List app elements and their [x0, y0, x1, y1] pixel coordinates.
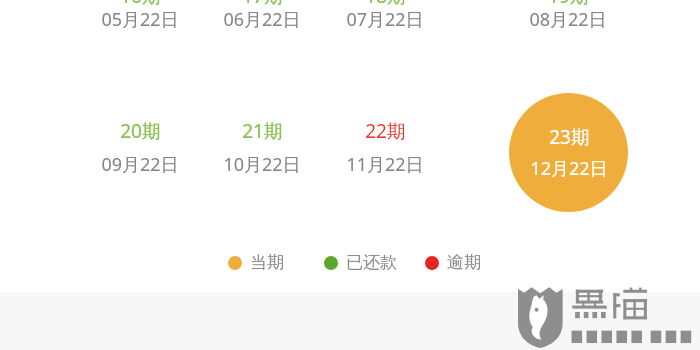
staticText: 11月22日 — [346, 152, 424, 177]
button[interactable]: 当期 — [228, 252, 284, 273]
button[interactable]: 07月22日 — [330, 7, 440, 32]
staticText: 05月22日 — [101, 7, 179, 32]
other: Black Cat watermark — [518, 286, 696, 348]
staticText: 09月22日 — [101, 152, 179, 177]
staticText: 10月22日 — [223, 152, 301, 177]
staticText: 已还款 — [346, 252, 397, 273]
staticText: 18期 — [365, 0, 406, 5]
staticText: 12月22日 — [530, 156, 608, 181]
staticText: 22期 — [365, 118, 406, 144]
staticText: 17期 — [242, 0, 283, 5]
button[interactable]: 21期 — [217, 118, 307, 144]
button[interactable]: 09月22日 — [85, 152, 195, 177]
button[interactable]: 20期 — [95, 118, 185, 144]
button[interactable]: 05月22日 — [85, 7, 195, 32]
staticText: 20期 — [120, 118, 161, 144]
button[interactable]: 11月22日 — [330, 152, 440, 177]
button[interactable]: 06月22日 — [207, 7, 317, 32]
button[interactable]: 08月22日 — [513, 7, 623, 32]
button[interactable]: 10月22日 — [207, 152, 317, 177]
button[interactable]: 逾期 — [425, 252, 481, 273]
staticText: 逾期 — [447, 252, 481, 273]
staticText: 23期 — [549, 124, 590, 150]
button[interactable]: 已还款 — [324, 252, 397, 273]
button[interactable]: 22期 — [340, 118, 430, 144]
button[interactable]: 23期 — [509, 93, 628, 212]
staticText: 21期 — [242, 118, 283, 144]
staticText: 06月22日 — [223, 7, 301, 32]
staticText: 16期 — [120, 0, 161, 5]
staticText: 19期 — [548, 0, 589, 5]
staticText: 当期 — [250, 252, 284, 273]
staticText: 08月22日 — [529, 7, 607, 32]
staticText: 07月22日 — [346, 7, 424, 32]
